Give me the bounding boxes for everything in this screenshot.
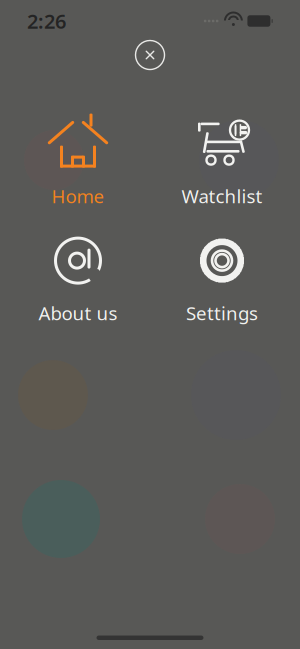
- staticText: Watchlist: [181, 184, 262, 208]
- staticText: 2:26: [27, 8, 66, 34]
- staticText: About us: [38, 301, 117, 325]
- button[interactable]: Close: [128, 33, 172, 77]
- button[interactable]: Home: [13, 115, 143, 210]
- staticText: Settings: [186, 301, 258, 325]
- button[interactable]: About us: [13, 232, 143, 327]
- button[interactable]: Watchlist: [157, 115, 287, 210]
- staticText: Home: [51, 184, 104, 208]
- button[interactable]: Settings: [157, 232, 287, 327]
